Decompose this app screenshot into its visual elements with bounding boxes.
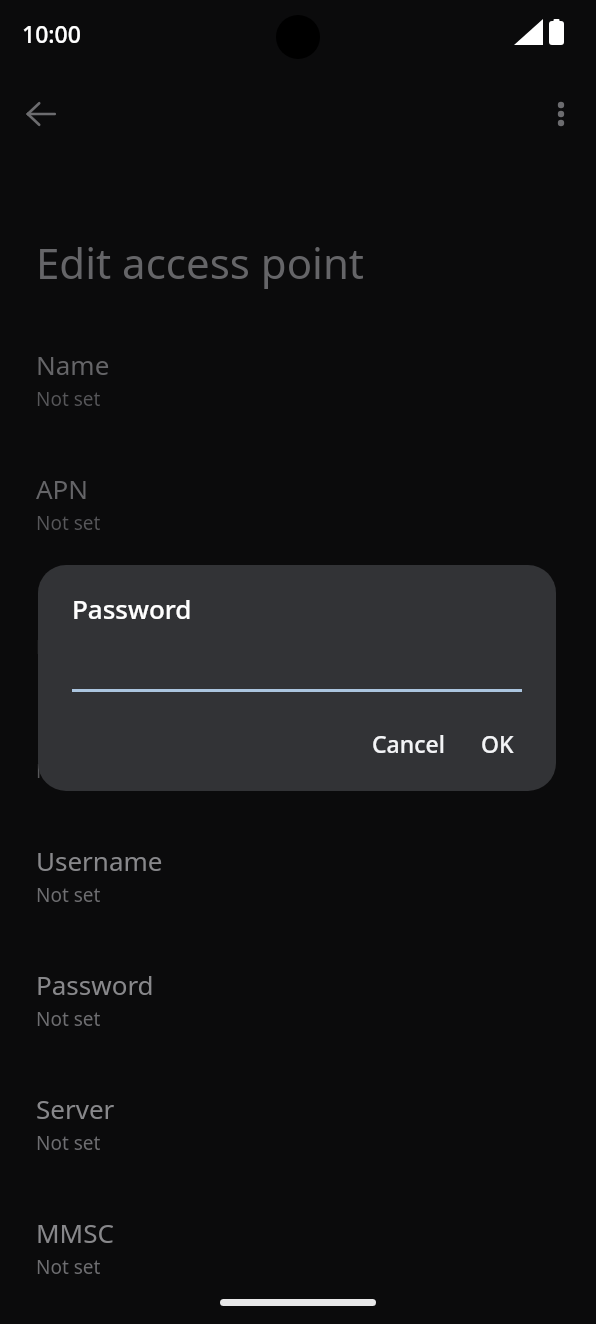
staticText: Username: [36, 843, 163, 878]
button[interactable]: Cancel: [354, 718, 463, 769]
staticText: Password: [72, 591, 192, 626]
button[interactable]: Password text field: [72, 660, 522, 692]
staticText: Edit access point: [36, 234, 365, 291]
button[interactable]: Proxy: [0, 542, 596, 666]
button[interactable]: MMSC: [0, 1162, 596, 1286]
staticText: MMSC: [36, 1215, 114, 1250]
button[interactable]: Username: [0, 790, 596, 914]
button[interactable]: Back: [8, 81, 74, 147]
button[interactable]: More options: [528, 81, 594, 147]
staticText: Not set: [36, 1006, 101, 1032]
button[interactable]: APN: [0, 418, 596, 542]
staticText: Not set: [36, 510, 101, 536]
staticText: Not set: [36, 634, 101, 660]
staticText: Not set: [36, 386, 101, 412]
staticText: 10:00: [22, 18, 81, 49]
staticText: Proxy: [36, 595, 105, 630]
staticText: Port: [36, 719, 88, 754]
button[interactable]: Server: [0, 1038, 596, 1162]
staticText: APN: [36, 471, 89, 506]
staticText: Cancel: [372, 728, 445, 759]
button[interactable]: Port: [0, 666, 596, 790]
staticText: OK: [481, 728, 514, 759]
staticText: Not set: [36, 882, 101, 908]
button[interactable]: OK: [463, 718, 532, 769]
staticText: Password: [36, 967, 154, 1002]
staticText: Not set: [36, 1130, 101, 1156]
button[interactable]: Name: [0, 347, 596, 418]
staticText: Server: [36, 1091, 115, 1126]
staticText: Not set: [36, 758, 101, 784]
button[interactable]: MMS proxy: [0, 1286, 596, 1324]
button[interactable]: Password: [0, 914, 596, 1038]
staticText: Not set: [36, 1254, 101, 1280]
staticText: Name: [36, 347, 110, 382]
